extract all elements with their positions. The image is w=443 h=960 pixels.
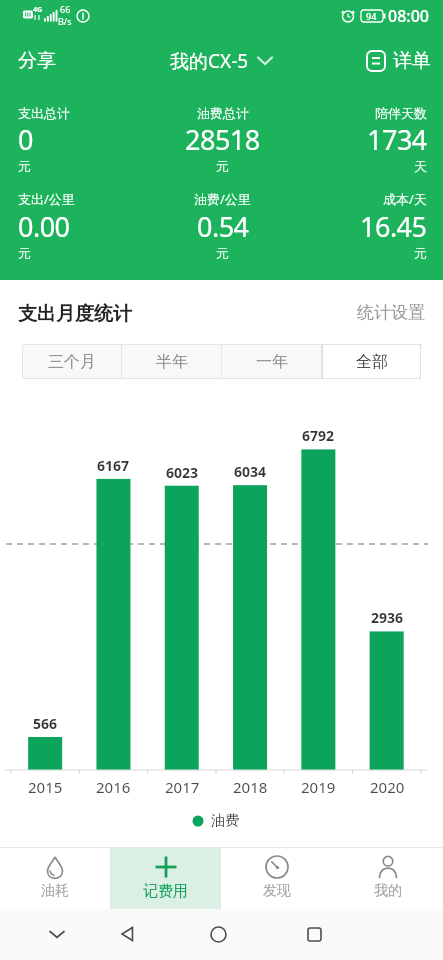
- staticText: 6023: [166, 463, 199, 482]
- button[interactable]: 统计设置: [340, 298, 425, 326]
- button[interactable]: 分享: [18, 49, 56, 73]
- staticText: 2018: [233, 777, 268, 797]
- staticText: 天: [414, 158, 427, 174]
- staticText: 记费用: [143, 882, 188, 901]
- staticText: 油费总计: [197, 105, 249, 121]
- staticText: 油费: [211, 812, 239, 830]
- staticText: 元: [18, 245, 31, 261]
- button[interactable]: 三个月: [22, 344, 121, 379]
- staticText: 16.45: [360, 208, 427, 245]
- staticText: 2019: [301, 777, 336, 797]
- staticText: 我的: [374, 882, 402, 900]
- button[interactable]: 详单: [365, 49, 431, 73]
- staticText: 2015: [28, 777, 63, 797]
- staticText: 元: [414, 245, 427, 261]
- staticText: 66: [60, 3, 71, 15]
- staticText: 半年: [156, 352, 188, 372]
- staticText: 6034: [234, 462, 267, 481]
- staticText: 一年: [256, 352, 288, 372]
- button[interactable]: [107, 914, 147, 954]
- staticText: 0.00: [18, 208, 70, 245]
- button[interactable]: 记费用: [110, 848, 221, 909]
- button[interactable]: 我的: [332, 848, 443, 909]
- staticText: 2016: [96, 777, 131, 797]
- staticText: 支出总计: [18, 105, 70, 121]
- staticText: B/s: [58, 15, 72, 27]
- staticText: 我的CX-5: [170, 48, 249, 74]
- staticText: 08:00: [388, 5, 429, 27]
- staticText: 6167: [97, 456, 130, 475]
- staticText: 2017: [165, 777, 200, 797]
- staticText: 支出月度统计: [18, 302, 132, 326]
- staticText: 2020: [370, 777, 405, 797]
- button[interactable]: 半年: [122, 344, 221, 379]
- button[interactable]: [294, 914, 334, 954]
- staticText: 0: [18, 121, 33, 158]
- staticText: 元: [216, 245, 229, 261]
- button[interactable]: [37, 914, 77, 954]
- button[interactable]: 油耗: [0, 848, 110, 909]
- staticText: 4G: [33, 5, 43, 15]
- staticText: 元: [216, 158, 229, 174]
- staticText: 油费/公里: [194, 190, 251, 208]
- staticText: 三个月: [48, 352, 96, 372]
- button[interactable]: 发现: [221, 848, 332, 909]
- staticText: 支出/公里: [18, 190, 75, 208]
- button[interactable]: 我的CX-5: [170, 48, 273, 74]
- staticText: 发现: [263, 882, 291, 900]
- staticText: 元: [18, 158, 31, 174]
- staticText: 1734: [367, 121, 427, 158]
- button[interactable]: [198, 914, 238, 954]
- staticText: 全部: [356, 352, 388, 372]
- staticText: 成本/天: [383, 190, 427, 208]
- staticText: 0.54: [197, 208, 249, 245]
- staticText: 94: [366, 10, 377, 22]
- staticText: 统计设置: [357, 302, 425, 323]
- staticText: 分享: [18, 49, 56, 73]
- staticText: 油耗: [41, 882, 69, 900]
- staticText: 2936: [371, 608, 404, 627]
- staticText: 详单: [393, 49, 431, 73]
- staticText: 566: [33, 714, 58, 733]
- staticText: 28518: [185, 121, 260, 158]
- button[interactable]: 全部: [322, 344, 421, 379]
- button[interactable]: 一年: [222, 344, 321, 379]
- staticText: 陪伴天数: [375, 105, 427, 121]
- staticText: 6792: [302, 426, 335, 445]
